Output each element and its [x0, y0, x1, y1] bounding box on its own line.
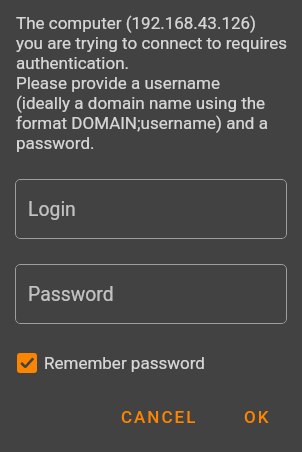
- staticText: Password: [28, 283, 114, 306]
- button[interactable]: OK: [242, 399, 273, 435]
- button[interactable]: CANCEL: [119, 399, 200, 435]
- staticText: The computer (192.168.43.126) you are tr…: [16, 13, 287, 153]
- staticText: Login: [28, 198, 76, 221]
- button[interactable]: Remember password: [0, 353, 217, 373]
- staticText: CANCEL: [121, 407, 198, 427]
- staticText: Remember password: [44, 353, 205, 373]
- button[interactable]: Password: [15, 264, 287, 324]
- button[interactable]: Login: [15, 179, 287, 239]
- staticText: OK: [244, 407, 271, 427]
